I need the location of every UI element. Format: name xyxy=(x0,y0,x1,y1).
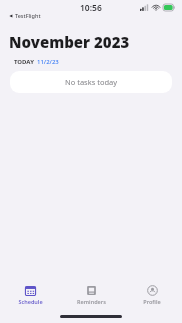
staticText: Schedule xyxy=(18,298,43,305)
staticText: 10:56 xyxy=(80,2,102,14)
button[interactable]: Profile xyxy=(124,283,180,307)
staticText: No tasks today xyxy=(65,77,118,87)
staticText: Reminders xyxy=(77,298,106,305)
button[interactable]: No tasks today xyxy=(10,71,172,93)
staticText: November 2023 xyxy=(9,32,130,52)
button[interactable]: Back to TestFlight xyxy=(9,12,41,19)
staticText: Profile xyxy=(143,298,161,305)
staticText: TODAY xyxy=(14,58,34,66)
button[interactable]: Reminders xyxy=(63,283,119,307)
staticText: 11/2/23 xyxy=(37,58,59,66)
staticText: TestFlight xyxy=(15,12,41,19)
button[interactable]: Schedule xyxy=(2,283,58,307)
